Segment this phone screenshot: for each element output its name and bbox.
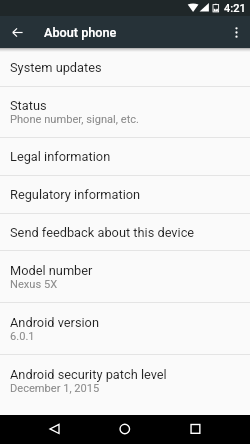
button[interactable]: Android security patch level bbox=[0, 355, 250, 406]
button[interactable]: Legal information bbox=[0, 138, 250, 175]
staticText: Regulatory information bbox=[10, 187, 141, 202]
staticText: December 1, 2015 bbox=[10, 382, 100, 395]
button[interactable]: Home bbox=[102, 415, 148, 444]
staticText: Legal information bbox=[10, 149, 111, 164]
button[interactable]: Navigate up bbox=[0, 16, 34, 48]
button[interactable]: System updates bbox=[0, 48, 250, 86]
button[interactable]: Regulatory information bbox=[0, 176, 250, 213]
staticText: Android version bbox=[10, 315, 99, 330]
staticText: Nexus 5X bbox=[10, 278, 58, 291]
button[interactable]: Status bbox=[0, 87, 250, 137]
staticText: Model number bbox=[10, 263, 93, 278]
button[interactable]: Android version bbox=[0, 303, 250, 354]
staticText: Send feedback about this device bbox=[10, 225, 195, 240]
button[interactable]: Back bbox=[28, 415, 74, 444]
staticText: About phone bbox=[44, 25, 117, 40]
staticText: 6.0.1 bbox=[10, 330, 35, 343]
staticText: System updates bbox=[10, 60, 102, 75]
button[interactable]: Send feedback about this device bbox=[0, 214, 250, 250]
staticText: 4:21 bbox=[224, 2, 246, 15]
staticText: Status bbox=[10, 98, 47, 113]
staticText: Android security patch level bbox=[10, 367, 167, 382]
staticText: Phone number, signal, etc. bbox=[10, 113, 139, 126]
button[interactable]: Recent apps bbox=[176, 415, 222, 444]
button[interactable]: More options bbox=[223, 16, 250, 48]
button[interactable]: Model number bbox=[0, 251, 250, 302]
